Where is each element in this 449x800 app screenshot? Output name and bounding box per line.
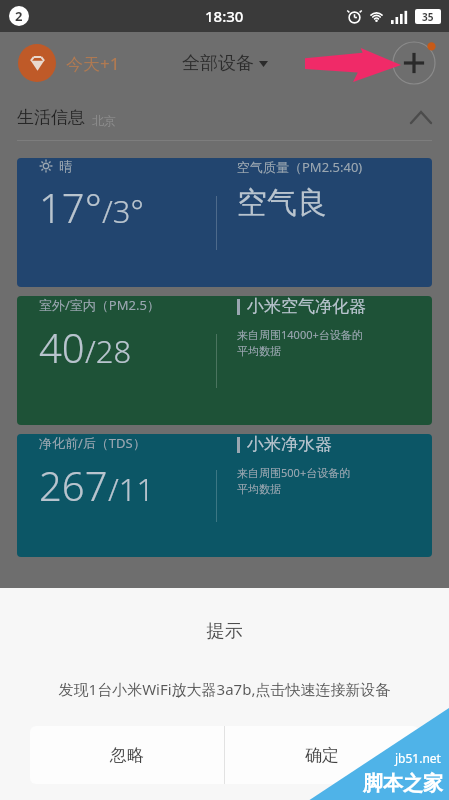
button[interactable]: 忽略 (30, 726, 224, 784)
button[interactable]: 室外/室内（PM2.5） (17, 296, 432, 425)
staticText: 空气质量（PM2.5:40) (237, 158, 363, 176)
staticText: 提示 (0, 620, 449, 643)
staticText: 忽略 (110, 745, 144, 766)
staticText: 小米空气净化器 (247, 296, 366, 317)
staticText: 净化前/后（TDS） (39, 434, 146, 452)
staticText: 脚本之家 (363, 771, 443, 796)
staticText: 空气良 (237, 184, 327, 222)
button[interactable]: 全部设备 (176, 46, 274, 81)
staticText: 全部设备 (182, 52, 254, 75)
staticText: 室外/室内（PM2.5） (39, 296, 160, 314)
staticText: /3° (102, 190, 144, 232)
staticText: 发现1台小米WiFi放大器3a7b,点击快速连接新设备 (12, 679, 437, 699)
button[interactable]: 确定 (225, 726, 419, 784)
staticText: 2 (15, 7, 23, 25)
staticText: 35 (422, 10, 434, 24)
staticText: 确定 (305, 745, 339, 766)
staticText: /28 (85, 330, 132, 372)
button[interactable]: 今天+1 (14, 40, 124, 86)
staticText: /11 (108, 468, 155, 510)
staticText: 小米净水器 (247, 434, 332, 455)
staticText: 北京 (92, 113, 116, 128)
button[interactable]: 净化前/后（TDS） (17, 434, 432, 557)
staticText: jb51.net (395, 750, 441, 766)
staticText: 17° (39, 180, 102, 234)
staticText: 今天+1 (66, 52, 120, 75)
staticText: 来自周围14000+台设备的 平均数据 (237, 327, 363, 358)
staticText: 晴 (59, 158, 72, 174)
button[interactable]: 生活信息 (0, 94, 449, 140)
staticText: 267 (39, 458, 108, 512)
staticText: 40 (39, 320, 85, 374)
staticText: 来自周围500+台设备的 平均数据 (237, 465, 351, 496)
button[interactable]: 添加设备 (391, 40, 437, 86)
staticText: 18:30 (205, 6, 244, 26)
button[interactable]: 晴 (17, 158, 432, 287)
staticText: 生活信息 (17, 107, 85, 128)
